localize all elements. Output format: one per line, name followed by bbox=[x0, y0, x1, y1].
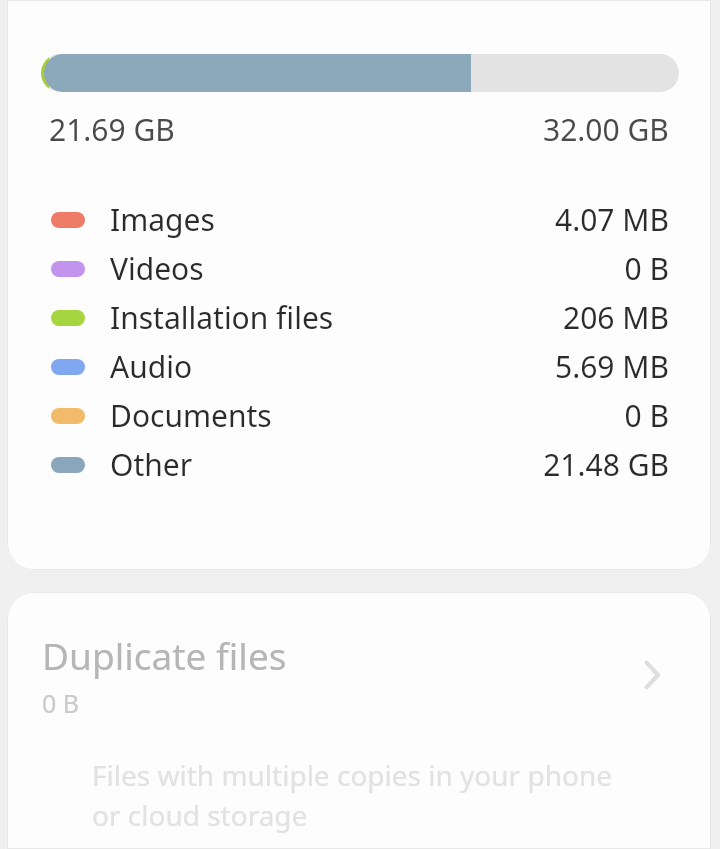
staticText: 4.07 MB bbox=[554, 199, 669, 240]
staticText: 21.69 GB bbox=[49, 109, 175, 150]
staticText: Files with multiple copies in your phone… bbox=[92, 756, 636, 835]
staticText: Other bbox=[110, 444, 193, 485]
button[interactable]: Documents bbox=[7, 391, 711, 440]
button[interactable]: Installation files bbox=[7, 293, 711, 342]
staticText: 0 B bbox=[624, 248, 669, 289]
staticText: Audio bbox=[110, 346, 193, 387]
staticText: Documents bbox=[110, 395, 272, 436]
button[interactable]: Videos bbox=[7, 244, 711, 293]
staticText: Videos bbox=[110, 248, 204, 289]
staticText: 32.00 GB bbox=[543, 109, 669, 150]
staticText: 0 B bbox=[624, 395, 669, 436]
staticText: 5.69 MB bbox=[554, 346, 669, 387]
staticText: 21.48 GB bbox=[543, 444, 669, 485]
staticText: Images bbox=[110, 199, 215, 240]
button[interactable]: Other bbox=[7, 440, 711, 489]
button[interactable]: Duplicate files bbox=[7, 592, 711, 849]
staticText: Installation files bbox=[110, 297, 334, 338]
staticText: 0 B bbox=[42, 686, 80, 720]
staticText: 206 MB bbox=[563, 297, 669, 338]
button[interactable]: Audio bbox=[7, 342, 711, 391]
staticText: Duplicate files bbox=[42, 630, 287, 680]
button[interactable]: Images bbox=[7, 195, 711, 244]
other: Open duplicate files bbox=[621, 645, 681, 705]
